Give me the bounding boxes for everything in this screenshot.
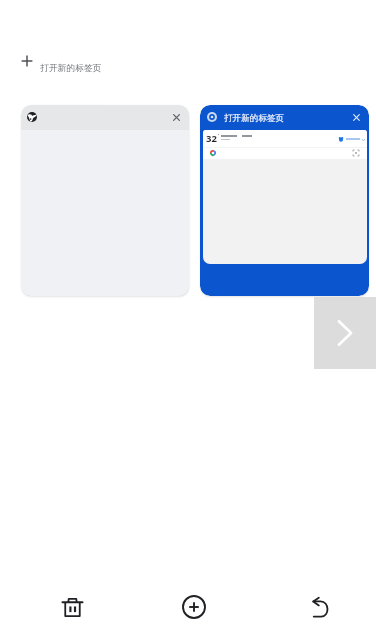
staticText: 打开新的标签页	[224, 113, 285, 124]
button[interactable]: Close all tabs	[48, 583, 96, 631]
staticText: 打开新的标签页	[40, 63, 102, 74]
button[interactable]: 打开新的标签页	[14, 45, 114, 77]
button[interactable]: Back	[295, 583, 343, 631]
button[interactable]	[21, 105, 189, 296]
button[interactable]: Next	[314, 297, 376, 369]
button[interactable]: 打开新的标签页	[200, 105, 369, 296]
staticText: 32	[206, 132, 217, 145]
button[interactable]: New tab	[170, 583, 218, 631]
